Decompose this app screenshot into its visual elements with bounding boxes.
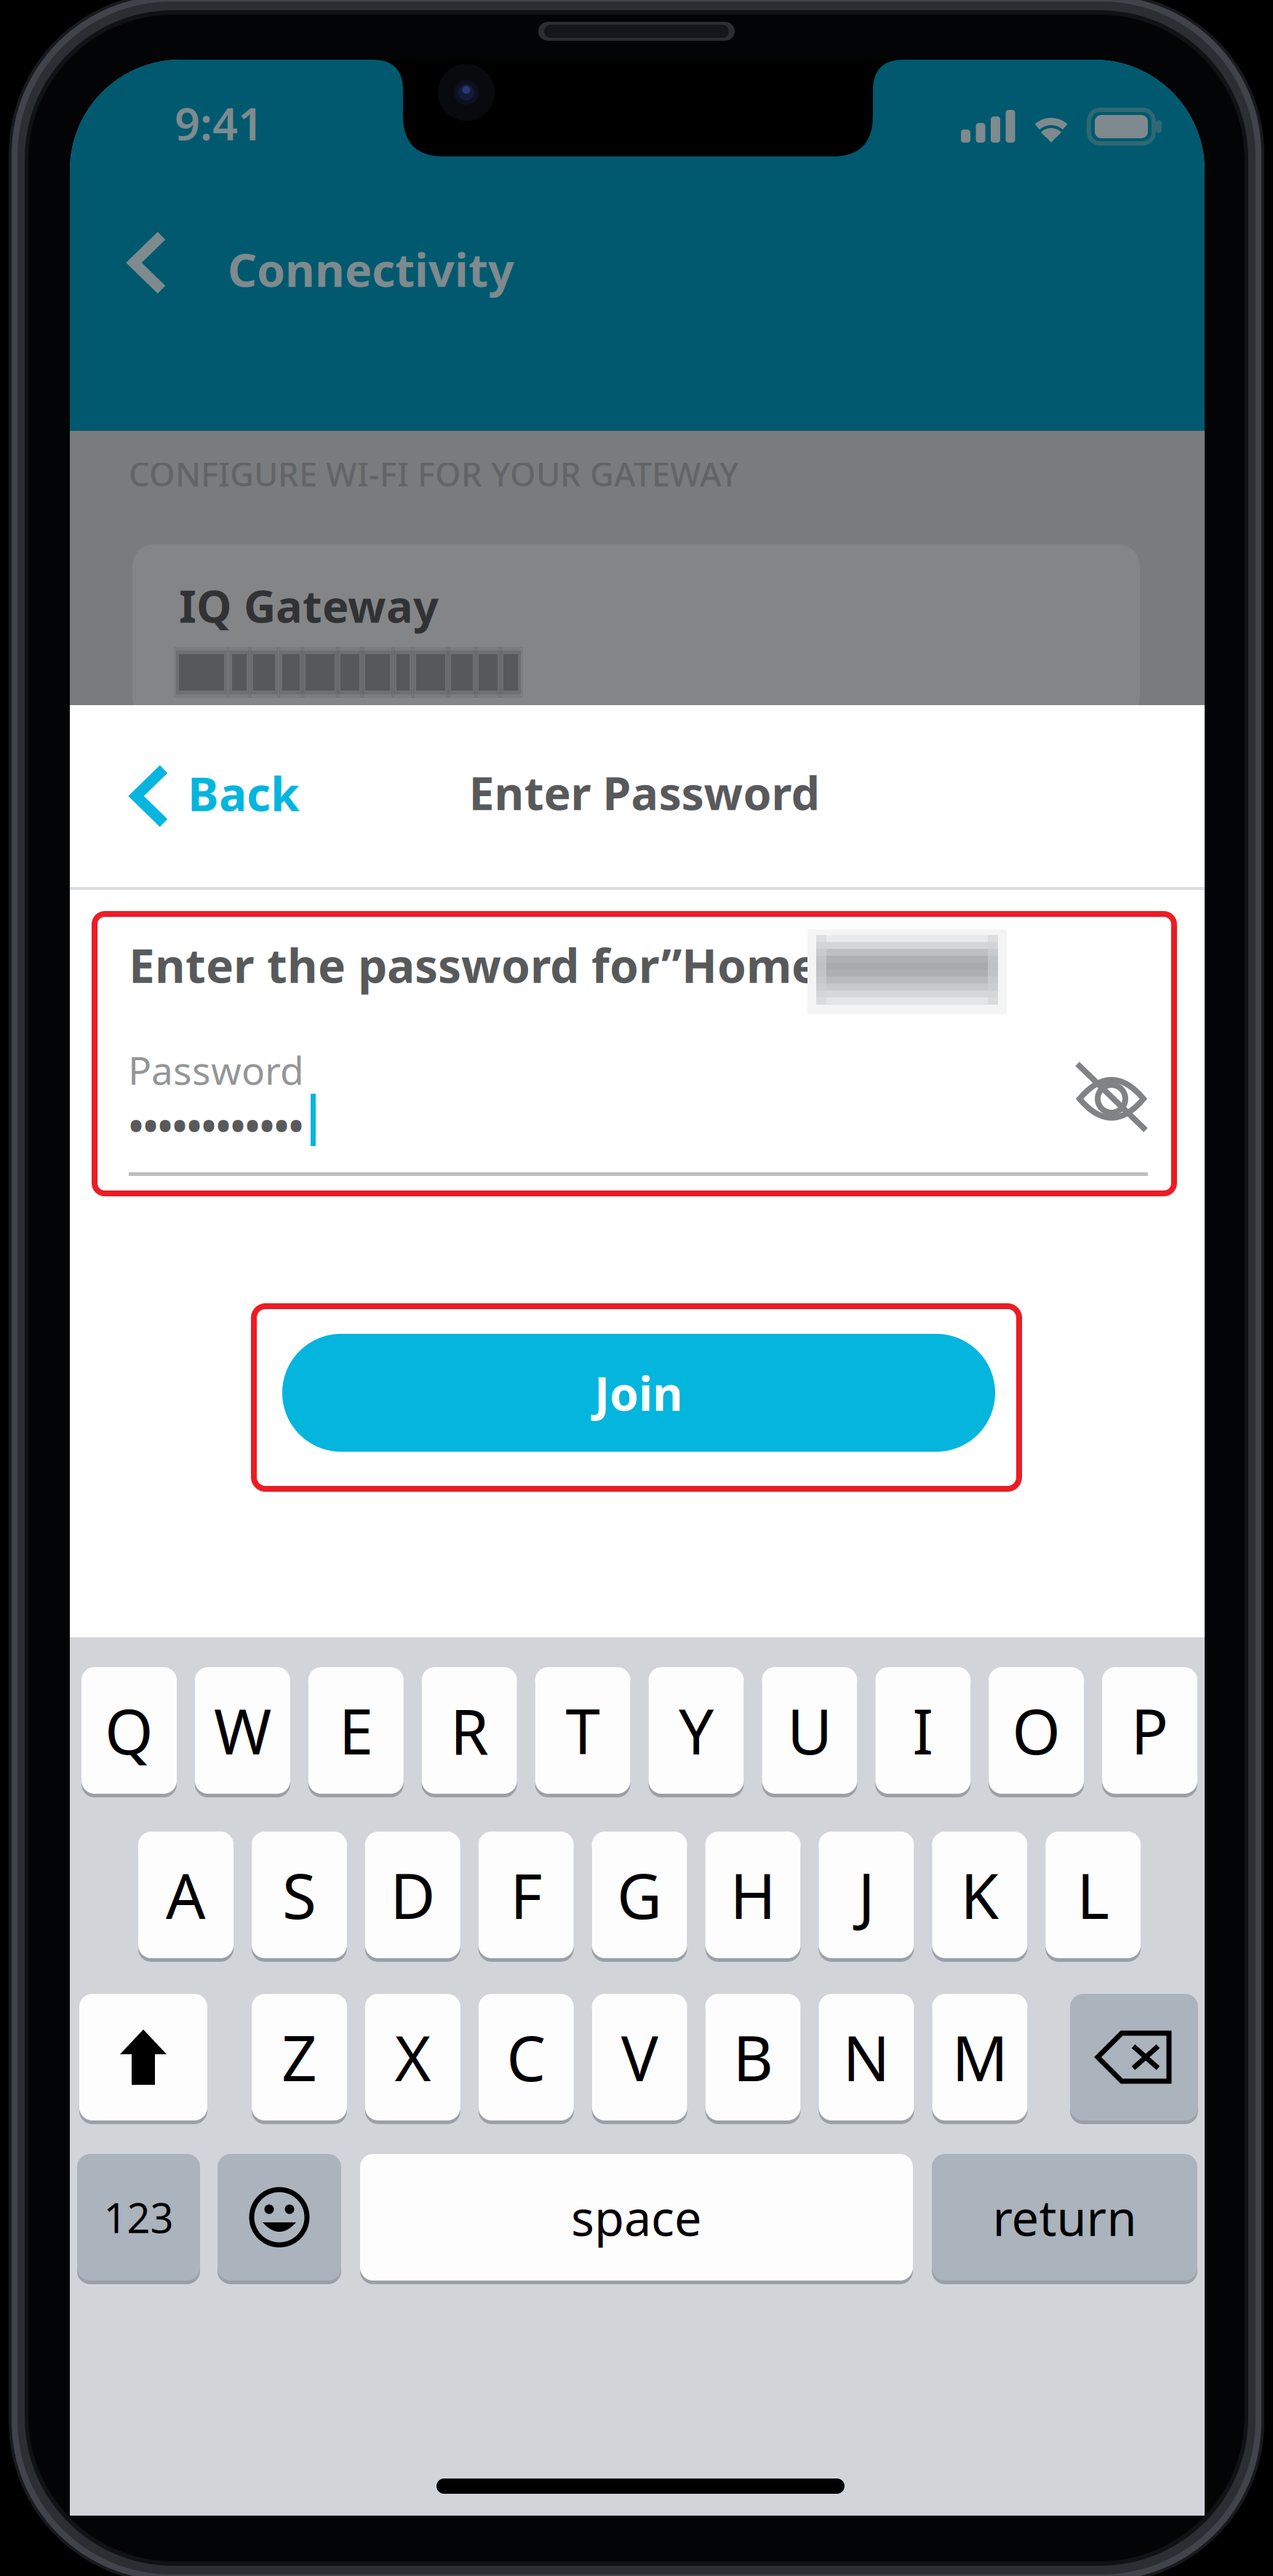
button[interactable]: Shift bbox=[79, 1994, 207, 2120]
staticText: T bbox=[566, 1689, 600, 1772]
staticText: Back bbox=[188, 762, 300, 824]
staticText: B bbox=[733, 2016, 773, 2098]
staticText: IQ Gateway bbox=[179, 576, 439, 635]
staticText: return bbox=[993, 2185, 1137, 2249]
button[interactable]: S bbox=[252, 1832, 347, 1958]
staticText: CONFIGURE WI-FI FOR YOUR GATEWAY bbox=[129, 452, 738, 496]
staticText: X bbox=[395, 2016, 431, 2098]
button[interactable]: G bbox=[592, 1832, 687, 1958]
button[interactable]: H bbox=[705, 1832, 801, 1958]
staticText: O bbox=[1012, 1689, 1061, 1772]
button[interactable]: W bbox=[195, 1667, 290, 1794]
button[interactable]: Y bbox=[649, 1667, 744, 1794]
button[interactable]: C bbox=[479, 1994, 574, 2120]
staticText: E bbox=[339, 1689, 373, 1772]
button[interactable]: B bbox=[705, 1994, 801, 2120]
button[interactable]: D bbox=[365, 1832, 460, 1958]
button[interactable]: Emoji bbox=[218, 2154, 341, 2281]
button[interactable]: U bbox=[762, 1667, 857, 1794]
staticText: Y bbox=[679, 1689, 714, 1772]
staticText: L bbox=[1077, 1854, 1109, 1936]
staticText: •••••••••••• bbox=[129, 1099, 303, 1151]
staticText: M bbox=[952, 2016, 1008, 2098]
staticText: space bbox=[571, 2185, 702, 2249]
staticText: N bbox=[843, 2016, 890, 2098]
staticText: W bbox=[214, 1689, 271, 1772]
staticText: Enter the password for”Home bbox=[129, 934, 819, 996]
staticText: Password bbox=[128, 1044, 304, 1095]
button[interactable]: E bbox=[308, 1667, 404, 1794]
staticText: J bbox=[858, 1854, 875, 1936]
button[interactable]: 123 bbox=[77, 2154, 200, 2281]
button[interactable]: Z bbox=[252, 1994, 347, 2120]
staticText: I bbox=[912, 1689, 934, 1772]
staticText: P bbox=[1131, 1689, 1169, 1772]
staticText: A bbox=[166, 1854, 206, 1936]
button[interactable]: V bbox=[592, 1994, 687, 2120]
button[interactable]: Back bbox=[109, 753, 342, 833]
button[interactable]: Delete bbox=[1070, 1994, 1198, 2120]
button[interactable]: K bbox=[932, 1832, 1027, 1958]
button[interactable]: R bbox=[422, 1667, 517, 1794]
button[interactable]: N bbox=[819, 1994, 914, 2120]
staticText: U bbox=[787, 1689, 832, 1772]
staticText: H bbox=[730, 1854, 776, 1936]
staticText: Enter Password bbox=[469, 762, 820, 823]
button[interactable]: Q bbox=[81, 1667, 177, 1794]
staticText: Z bbox=[282, 2016, 317, 2098]
button[interactable]: return bbox=[932, 2154, 1197, 2281]
button[interactable]: A bbox=[138, 1832, 234, 1958]
staticText: K bbox=[960, 1854, 999, 1936]
staticText: V bbox=[621, 2016, 658, 2098]
staticText: S bbox=[282, 1854, 316, 1936]
button[interactable]: Show password bbox=[1075, 1057, 1148, 1141]
staticText: 9:41 bbox=[175, 93, 263, 153]
staticText: Join bbox=[594, 1362, 683, 1424]
staticText: 123 bbox=[104, 2190, 173, 2244]
button[interactable]: I bbox=[875, 1667, 971, 1794]
staticText: F bbox=[510, 1854, 542, 1936]
staticText: R bbox=[450, 1689, 489, 1772]
button[interactable]: Join bbox=[282, 1334, 995, 1452]
button[interactable]: T bbox=[535, 1667, 630, 1794]
staticText: C bbox=[507, 2016, 546, 2098]
button[interactable]: F bbox=[478, 1832, 574, 1958]
staticText: Connectivity bbox=[228, 239, 514, 300]
staticText: Q bbox=[105, 1689, 153, 1772]
button[interactable]: space bbox=[360, 2154, 913, 2281]
staticText: G bbox=[617, 1854, 662, 1936]
button[interactable]: P bbox=[1102, 1667, 1197, 1794]
button[interactable]: M bbox=[932, 1994, 1027, 2120]
staticText: D bbox=[390, 1854, 435, 1936]
button[interactable]: L bbox=[1045, 1832, 1141, 1958]
button[interactable]: O bbox=[989, 1667, 1084, 1794]
button[interactable]: X bbox=[365, 1994, 460, 2120]
button[interactable]: J bbox=[819, 1832, 914, 1958]
